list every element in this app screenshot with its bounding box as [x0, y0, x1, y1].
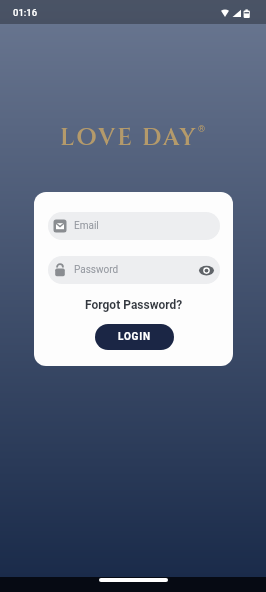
staticText: LOGIN — [118, 331, 151, 343]
staticText: Forgot Password? — [85, 298, 183, 312]
button[interactable]: LOGIN — [95, 324, 174, 350]
staticText: ® — [198, 124, 206, 135]
button[interactable]: Email — [48, 212, 220, 240]
staticText: Password — [74, 264, 119, 276]
staticText: 01:16 — [13, 7, 38, 18]
button[interactable]: Password — [48, 256, 220, 284]
button[interactable]: Forgot Password? — [85, 298, 183, 312]
staticText: LOVE DAY — [60, 122, 198, 154]
staticText: Email — [74, 220, 99, 232]
